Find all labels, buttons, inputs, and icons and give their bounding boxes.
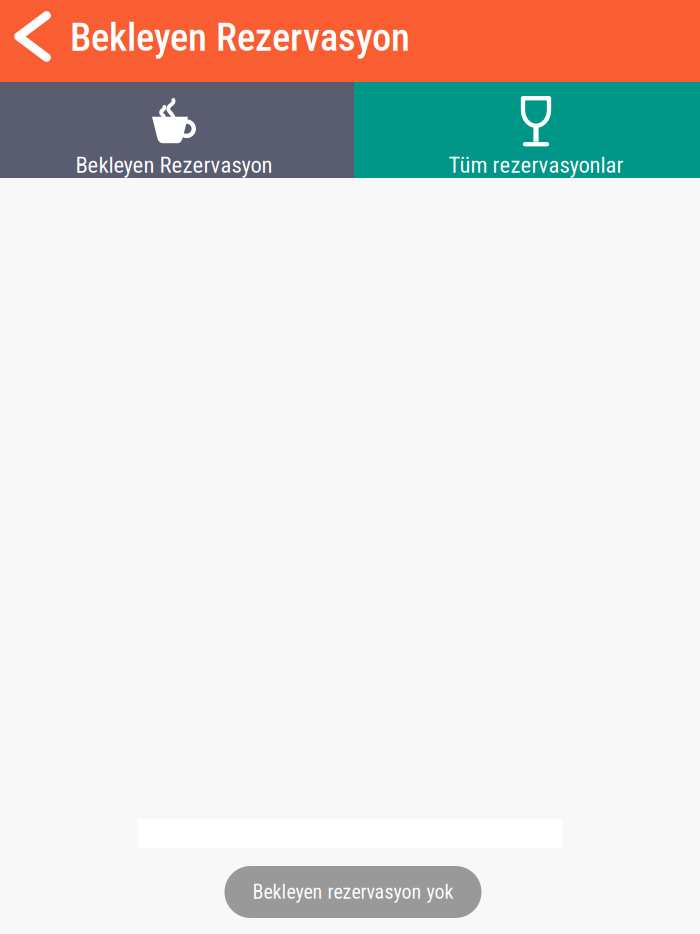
staticText: Bekleyen Rezervasyon	[70, 15, 410, 60]
button[interactable]: Tüm rezervasyonlar	[354, 82, 700, 178]
button[interactable]: Back	[0, 0, 70, 82]
staticText: Bekleyen rezervasyon yok	[252, 880, 453, 904]
staticText: Tüm rezervasyonlar	[448, 152, 623, 178]
button[interactable]: Bekleyen rezervasyon yok	[218, 866, 481, 918]
button[interactable]: Bekleyen Rezervasyon	[0, 82, 354, 178]
staticText: Bekleyen Rezervasyon	[75, 152, 272, 178]
